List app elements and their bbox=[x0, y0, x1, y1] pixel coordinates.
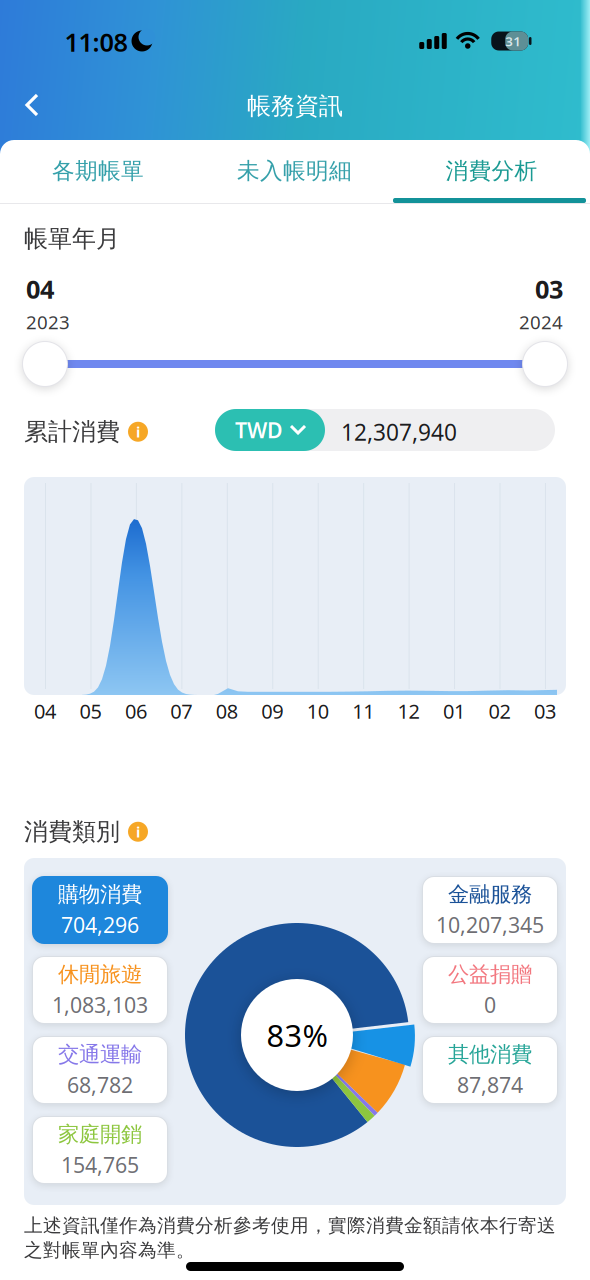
staticText: 未入帳明細 bbox=[237, 157, 352, 185]
staticText: 12 bbox=[398, 698, 420, 724]
staticText: 10 bbox=[307, 698, 329, 724]
staticText: i bbox=[136, 822, 140, 841]
button[interactable]: 家庭開銷 bbox=[32, 1116, 168, 1184]
button[interactable]: 金融服務 bbox=[422, 876, 558, 944]
staticText: 01 bbox=[443, 698, 465, 724]
staticText: 2024 bbox=[519, 310, 563, 334]
staticText: 0 bbox=[484, 990, 496, 1019]
staticText: 08 bbox=[216, 698, 238, 724]
staticText: 上述資訊僅作為消費分析參考使用，實際消費金額請依本行寄送 之對帳單內容為準。 bbox=[24, 1214, 556, 1262]
staticText: 帳務資訊 bbox=[247, 91, 343, 121]
staticText: 87,874 bbox=[457, 1070, 523, 1099]
staticText: 02 bbox=[488, 698, 510, 724]
button[interactable]: Start month bbox=[22, 341, 68, 387]
staticText: 03 bbox=[535, 272, 563, 306]
button[interactable]: 未入帳明細 bbox=[196, 142, 393, 200]
staticText: 09 bbox=[261, 698, 283, 724]
staticText: 交通運輸 bbox=[58, 1041, 142, 1067]
staticText: 消費類別 bbox=[24, 817, 120, 846]
staticText: 68,782 bbox=[67, 1070, 133, 1099]
button[interactable]: 購物消費 bbox=[32, 876, 168, 944]
staticText: 休閒旅遊 bbox=[58, 961, 142, 987]
staticText: 154,765 bbox=[61, 1150, 139, 1179]
button[interactable]: 休閒旅遊 bbox=[32, 956, 168, 1024]
staticText: 704,296 bbox=[61, 910, 139, 939]
button[interactable]: Currency TWD bbox=[215, 409, 325, 451]
staticText: 05 bbox=[79, 698, 101, 724]
staticText: 06 bbox=[125, 698, 147, 724]
staticText: 1,083,103 bbox=[52, 990, 148, 1019]
button[interactable]: About spending categories bbox=[128, 822, 148, 842]
staticText: 累計消費 bbox=[24, 417, 120, 446]
staticText: 83% bbox=[266, 1015, 327, 1055]
button[interactable]: 消費分析 bbox=[393, 142, 590, 200]
staticText: 11:08 bbox=[64, 25, 127, 59]
staticText: 04 bbox=[26, 272, 54, 306]
staticText: 公益捐贈 bbox=[448, 961, 532, 987]
staticText: 帳單年月 bbox=[24, 224, 120, 253]
staticText: 家庭開銷 bbox=[58, 1121, 142, 1147]
staticText: 金融服務 bbox=[448, 881, 532, 907]
button[interactable]: 各期帳單 bbox=[0, 142, 196, 200]
staticText: 購物消費 bbox=[58, 881, 142, 907]
button[interactable]: Back bbox=[12, 81, 52, 129]
staticText: 其他消費 bbox=[448, 1041, 532, 1067]
staticText: 04 bbox=[34, 698, 56, 724]
staticText: 消費分析 bbox=[445, 157, 537, 185]
staticText: TWD bbox=[235, 416, 283, 444]
button[interactable]: End month bbox=[522, 341, 568, 387]
staticText: 2023 bbox=[26, 310, 70, 334]
button[interactable]: 其他消費 bbox=[422, 1036, 558, 1104]
staticText: 31 bbox=[505, 32, 521, 50]
button[interactable]: About cumulative spending bbox=[128, 422, 148, 442]
staticText: 11 bbox=[352, 698, 374, 724]
button[interactable]: 公益捐贈 bbox=[422, 956, 558, 1024]
staticText: 03 bbox=[534, 698, 556, 724]
staticText: 12,307,940 bbox=[341, 417, 457, 447]
staticText: i bbox=[136, 422, 140, 441]
staticText: 各期帳單 bbox=[52, 157, 144, 185]
button[interactable]: 交通運輸 bbox=[32, 1036, 168, 1104]
staticText: 10,207,345 bbox=[436, 910, 544, 939]
staticText: 07 bbox=[170, 698, 192, 724]
